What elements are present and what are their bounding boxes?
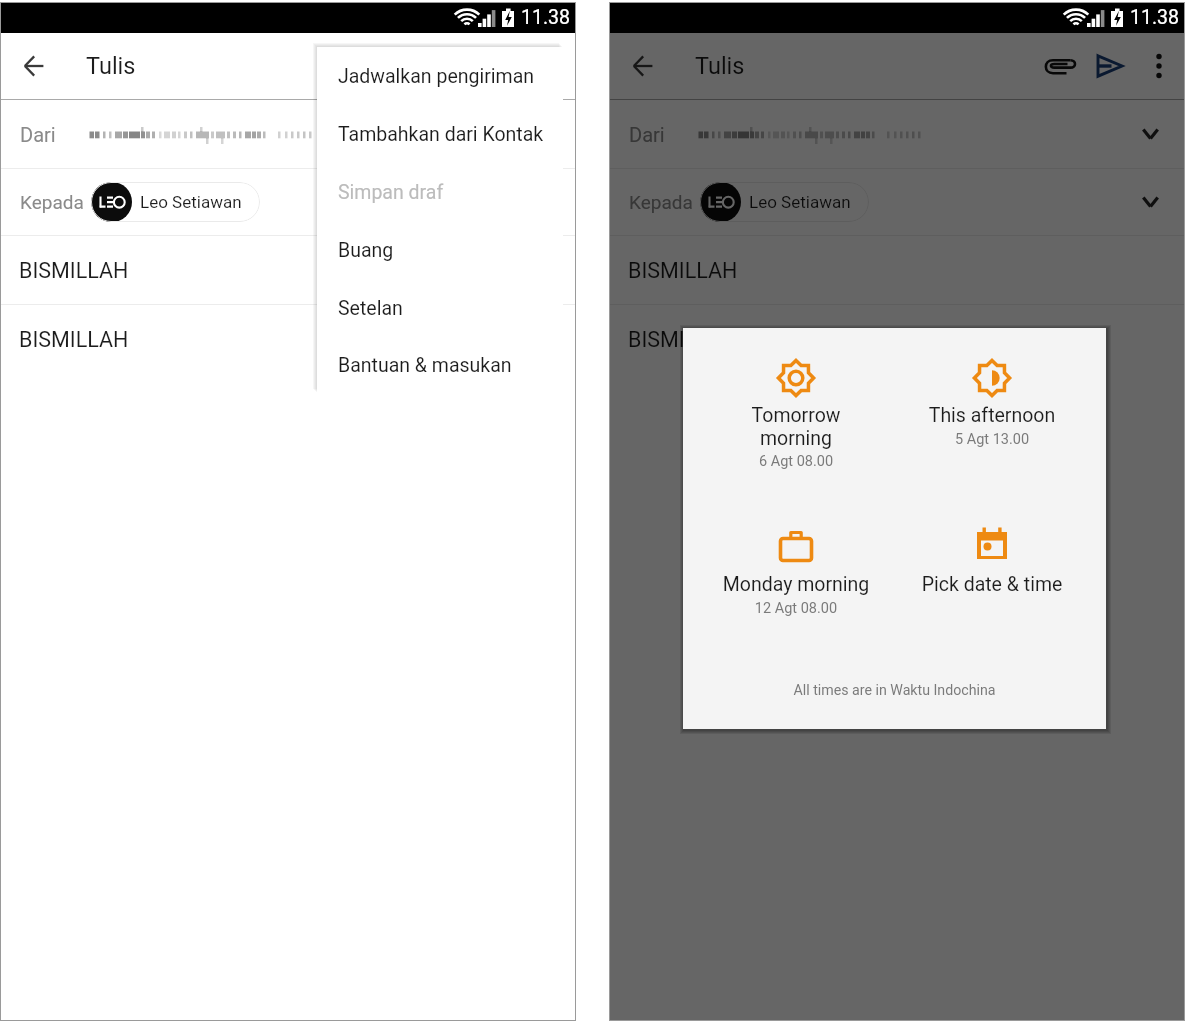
staticText: BISMILLAH xyxy=(628,327,738,352)
button[interactable]: This afternoon xyxy=(886,347,1098,455)
button[interactable]: Jadwalkan pengiriman xyxy=(317,47,563,105)
button[interactable]: Dari xyxy=(610,100,1184,168)
staticText: Bantuan & masukan xyxy=(338,354,512,377)
staticText: Dari xyxy=(20,123,56,146)
staticText: Kepada xyxy=(629,191,693,213)
staticText: Tomorrow morning xyxy=(690,404,902,450)
button[interactable]: Tambahkan dari Kontak xyxy=(317,105,563,163)
staticText: Monday morning xyxy=(690,573,902,596)
button[interactable]: Back xyxy=(619,42,667,90)
button[interactable]: BISMILLAH xyxy=(1,305,575,373)
staticText: 12 Agt 08.00 xyxy=(690,600,902,617)
button[interactable]: Dari xyxy=(1,100,575,168)
staticText: Leo Setiawan xyxy=(749,192,851,212)
staticText: 11.38 xyxy=(521,6,570,29)
staticText: 5 Agt 13.00 xyxy=(886,431,1098,448)
staticText: This afternoon xyxy=(886,404,1098,427)
button[interactable]: Buang xyxy=(317,221,563,279)
button[interactable]: BISMILLAH xyxy=(610,236,1184,304)
staticText: Tulis xyxy=(695,52,745,80)
staticText: Jadwalkan pengiriman xyxy=(338,65,535,88)
button[interactable]: Kepada xyxy=(1,169,575,235)
button[interactable]: Setelan xyxy=(317,279,563,337)
staticText: Simpan draf xyxy=(338,181,444,204)
button[interactable]: Tomorrow morning xyxy=(690,347,902,477)
staticText: 6 Agt 08.00 xyxy=(690,453,902,470)
button[interactable]: Back xyxy=(10,42,58,90)
button[interactable]: Kepada xyxy=(610,169,1184,235)
button[interactable]: Attach file xyxy=(1032,40,1084,92)
staticText: BISMILLAH xyxy=(628,258,738,283)
staticText: All times are in Waktu Indochina xyxy=(683,682,1106,699)
staticText: Leo Setiawan xyxy=(140,192,242,212)
button[interactable]: Leo Setiawan xyxy=(700,182,869,222)
staticText: Tulis xyxy=(86,52,136,80)
button[interactable]: Monday morning xyxy=(690,512,902,624)
staticText: Buang xyxy=(338,239,394,262)
staticText: Dari xyxy=(629,123,665,146)
staticText: Kepada xyxy=(20,191,84,213)
staticText: 11.38 xyxy=(1130,6,1179,29)
button[interactable]: More options xyxy=(1136,43,1182,89)
staticText: BISMILLAH xyxy=(19,258,129,283)
staticText: BISMILLAH xyxy=(19,327,129,352)
button[interactable]: Simpan draf xyxy=(317,163,563,221)
button[interactable]: BISMILLAH xyxy=(1,236,575,304)
button[interactable]: Bantuan & masukan xyxy=(317,337,563,393)
button[interactable]: Leo Setiawan xyxy=(91,182,260,222)
staticText: Setelan xyxy=(338,297,403,320)
button[interactable]: Send xyxy=(1084,40,1136,92)
staticText: Pick date & time xyxy=(886,573,1098,596)
button[interactable]: Pick date & time xyxy=(886,512,1098,624)
button[interactable]: BISMILLAH xyxy=(610,305,1184,373)
staticText: Tambahkan dari Kontak xyxy=(338,123,544,146)
